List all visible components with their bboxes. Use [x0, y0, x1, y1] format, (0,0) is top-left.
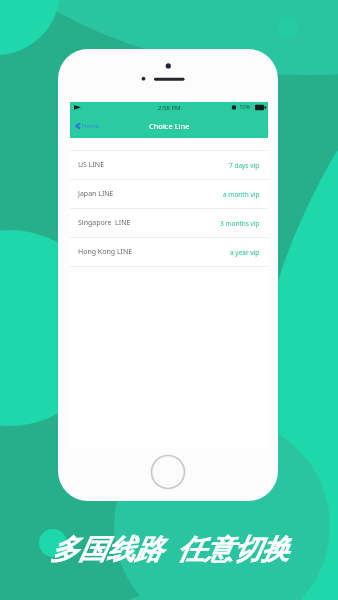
staticText: Japan LINE	[78, 189, 114, 199]
staticText: 2:58 PM	[158, 104, 181, 112]
staticText: 3 months vip	[220, 219, 260, 228]
staticText: 7 days vip	[229, 161, 260, 170]
staticText: US LINE	[78, 160, 105, 170]
button[interactable]: Hong Kong LINE	[70, 238, 268, 266]
staticText: Hong Kong LINE	[78, 247, 133, 257]
staticText: Singapore LINE	[78, 218, 131, 228]
staticText: Home	[82, 122, 100, 130]
button[interactable]: Home	[70, 122, 106, 130]
button[interactable]: Singapore LINE	[70, 209, 268, 237]
staticText: a month vip	[223, 190, 260, 199]
staticText: a year vip	[230, 248, 260, 257]
button[interactable]: US LINE	[70, 151, 268, 179]
staticText: 53%	[240, 104, 250, 111]
button[interactable]: Japan LINE	[70, 180, 268, 208]
staticText: Choice Line	[149, 121, 190, 131]
staticText: 多国线路 任意切换	[50, 529, 289, 567]
